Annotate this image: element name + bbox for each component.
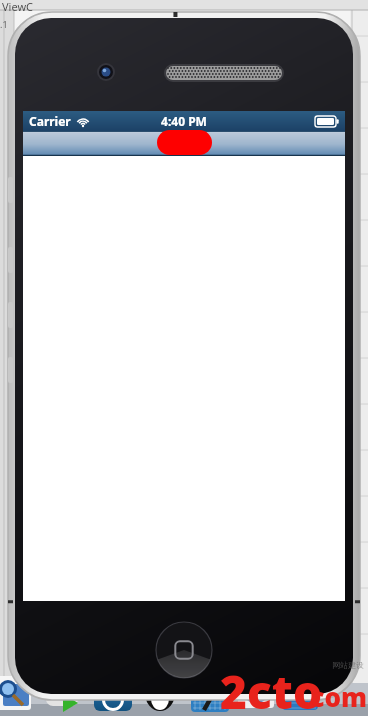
staticText: Carrier bbox=[29, 113, 71, 129]
staticText: .1 bbox=[0, 18, 8, 30]
button[interactable]: Home bbox=[156, 622, 212, 678]
staticText: 4:40 PM bbox=[161, 113, 207, 129]
button[interactable]: Record bbox=[157, 130, 212, 155]
staticText: 2cto bbox=[220, 660, 323, 716]
staticText: ViewC bbox=[2, 0, 34, 14]
staticText: 网站建设 bbox=[332, 660, 364, 670]
staticText: .com bbox=[303, 679, 368, 714]
